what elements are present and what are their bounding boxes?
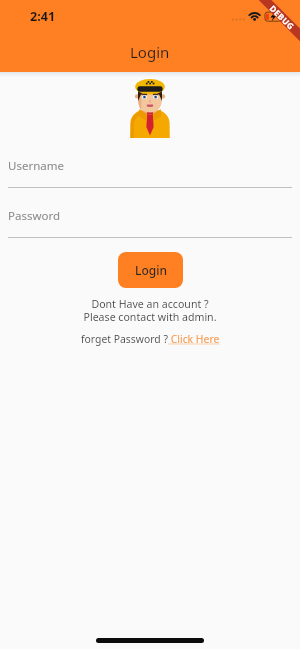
staticText: Username [8, 158, 64, 174]
staticText: Password [8, 208, 61, 224]
staticText: Click Here [168, 332, 220, 346]
staticText: 2:41 [30, 8, 56, 25]
staticText: Login [135, 262, 167, 278]
staticText: Login [130, 42, 170, 62]
button[interactable]: Click Here [168, 332, 220, 346]
button[interactable]: Login [118, 252, 183, 288]
staticText: DEBUG [268, 3, 297, 32]
staticText: Dont Have an account ? Please contact wi… [0, 297, 300, 324]
button[interactable]: Password [0, 208, 300, 238]
button[interactable]: Username [0, 158, 300, 188]
staticText: forget Password ? [81, 332, 168, 346]
